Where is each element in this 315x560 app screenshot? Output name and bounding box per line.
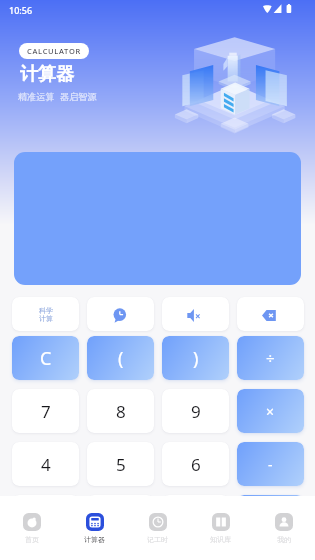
staticText: ÷ bbox=[266, 348, 275, 368]
staticText: 10:56 bbox=[9, 4, 33, 16]
button[interactable]: 知识库 bbox=[189, 496, 252, 560]
button[interactable]: 9 bbox=[162, 389, 229, 433]
staticText: 8 bbox=[116, 400, 126, 423]
staticText: × bbox=[266, 402, 275, 421]
button[interactable]: 我的 bbox=[252, 496, 315, 560]
button[interactable]: ÷ bbox=[237, 336, 304, 380]
button[interactable]: 5 bbox=[87, 442, 154, 486]
button[interactable]: + bbox=[237, 495, 304, 539]
staticText: 9 bbox=[191, 400, 201, 423]
button[interactable]: 3 bbox=[162, 495, 229, 539]
button[interactable]: CALCULATOR bbox=[19, 43, 89, 59]
staticText: ) bbox=[193, 346, 199, 371]
staticText: CALCULATOR bbox=[27, 46, 81, 56]
staticText: 7 bbox=[41, 400, 51, 423]
staticText: 首页 bbox=[25, 535, 39, 544]
button[interactable]: 4 bbox=[12, 442, 79, 486]
staticText: 精准运算 器启智源 bbox=[18, 90, 97, 102]
button[interactable]: × bbox=[237, 389, 304, 433]
staticText: - bbox=[268, 455, 273, 474]
button[interactable]: 首页 bbox=[0, 496, 63, 560]
button[interactable]: ( bbox=[87, 336, 154, 380]
staticText: 6 bbox=[191, 453, 201, 476]
staticText: ( bbox=[118, 346, 124, 371]
button[interactable]: 7 bbox=[12, 389, 79, 433]
button[interactable] bbox=[14, 152, 301, 285]
button[interactable]: Backspace bbox=[237, 297, 304, 331]
staticText: 计算器 bbox=[20, 63, 74, 86]
button[interactable]: - bbox=[237, 442, 304, 486]
button[interactable]: Mute bbox=[162, 297, 229, 331]
staticText: 5 bbox=[116, 453, 126, 476]
button[interactable]: 计算器 bbox=[63, 496, 126, 560]
button[interactable]: C bbox=[12, 336, 79, 380]
staticText: 科学 计算 bbox=[39, 306, 53, 323]
button[interactable]: 记工时 bbox=[126, 496, 189, 560]
staticText: 计算器 bbox=[84, 535, 105, 544]
staticText: 我的 bbox=[277, 535, 291, 544]
button[interactable]: 2 bbox=[87, 495, 154, 539]
button[interactable]: ) bbox=[162, 336, 229, 380]
button[interactable]: 8 bbox=[87, 389, 154, 433]
staticText: 知识库 bbox=[210, 535, 231, 544]
button[interactable]: 1 bbox=[12, 495, 79, 539]
staticText: C bbox=[40, 346, 52, 371]
button[interactable]: History bbox=[87, 297, 154, 331]
button[interactable]: 6 bbox=[162, 442, 229, 486]
button[interactable]: 科学 计算 bbox=[12, 297, 79, 331]
staticText: 4 bbox=[41, 453, 51, 476]
staticText: 记工时 bbox=[147, 535, 168, 544]
